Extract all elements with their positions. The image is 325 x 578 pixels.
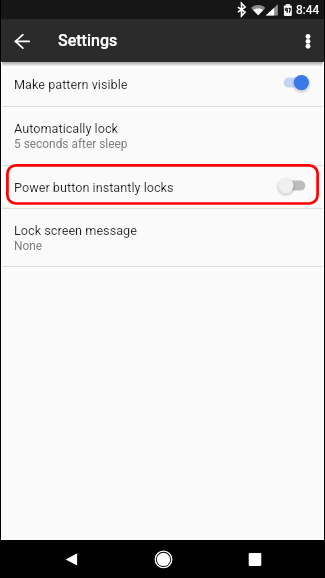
button[interactable]: Recent apps — [231, 540, 279, 578]
staticText: Make pattern visible — [14, 77, 277, 92]
staticText: Settings — [58, 31, 118, 50]
button[interactable]: Navigate up — [0, 19, 44, 62]
staticText: Automatically lock — [14, 121, 118, 136]
staticText: Power button instantly locks — [14, 180, 277, 195]
button[interactable]: Lock screen message — [0, 209, 325, 266]
staticText: None — [14, 239, 43, 253]
button[interactable]: Back — [48, 540, 96, 578]
button[interactable]: Automatically lock — [0, 107, 325, 165]
button[interactable]: More options — [291, 19, 325, 62]
button[interactable]: Home — [139, 540, 187, 578]
staticText: 8:44 — [296, 3, 320, 17]
button[interactable]: Make pattern visible — [0, 62, 325, 106]
staticText: Lock screen message — [14, 223, 137, 238]
staticText: 5 seconds after sleep — [14, 137, 128, 151]
button[interactable]: Power button instantly locks — [0, 166, 325, 208]
